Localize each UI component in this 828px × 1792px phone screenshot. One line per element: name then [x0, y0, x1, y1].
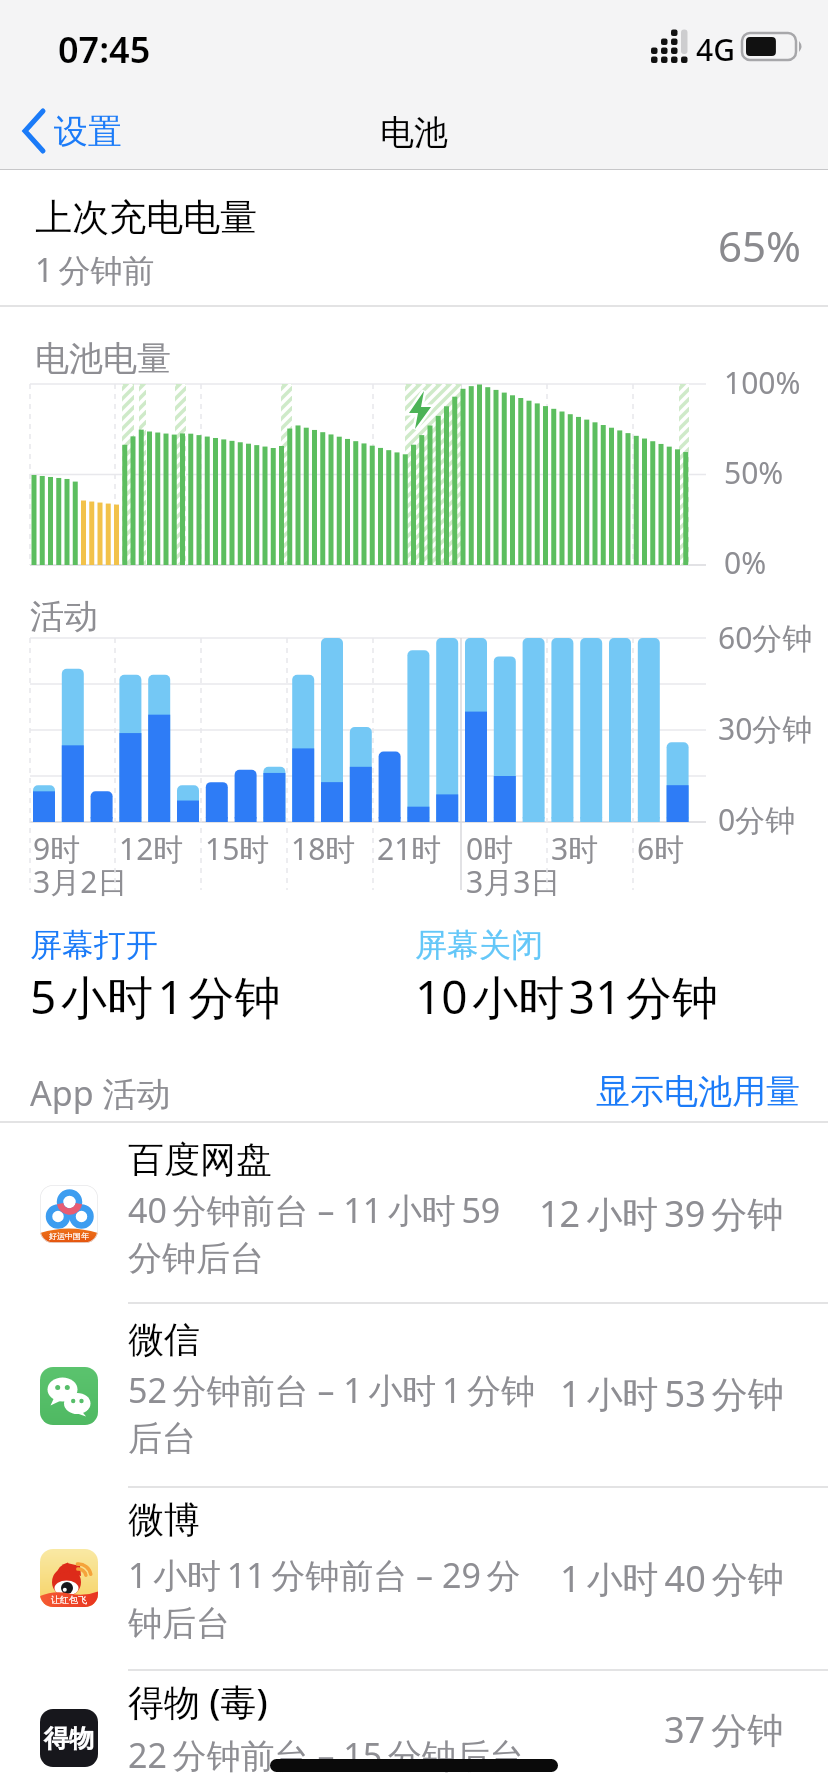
staticText: 3时 [551, 828, 599, 869]
staticText: 37 分钟 [664, 1705, 784, 1754]
staticText: 1 小时 53 分钟 [560, 1369, 784, 1418]
staticText: 得物 (毒) [128, 1677, 268, 1726]
staticText: 0分钟 [718, 799, 796, 840]
staticText: 3月3日 [466, 861, 561, 902]
staticText: 上次充电电量 [35, 194, 257, 241]
staticText: 电池电量 [35, 337, 171, 380]
staticText: 6时 [637, 828, 685, 869]
staticText: 设置 [54, 110, 122, 153]
staticText: 分钟后台 [128, 1237, 264, 1280]
staticText: 07:45 [58, 25, 151, 74]
staticText: 52 分钟前台 – 1 小时 1 分钟 [128, 1367, 536, 1413]
staticText: 21时 [377, 828, 442, 869]
staticText: 后台 [128, 1417, 196, 1460]
staticText: 好运中国年 [49, 1231, 89, 1241]
staticText: 10 小时 31 分钟 [415, 965, 719, 1028]
staticText: 15时 [205, 828, 270, 869]
staticText: 100% [724, 362, 801, 403]
staticText: 65% [718, 217, 801, 274]
button[interactable] [0, 1670, 828, 1792]
staticText: 9时 [33, 828, 81, 869]
staticText: 微信 [128, 1317, 200, 1362]
button[interactable]: 设置 [18, 106, 122, 156]
staticText: 屏幕打开 [30, 925, 158, 965]
staticText: 百度网盘 [128, 1137, 272, 1182]
staticText: 30分钟 [718, 708, 813, 749]
staticText: 让红包飞 [51, 1594, 87, 1605]
staticText: 1 小时 11 分钟前台 – 29 分 [128, 1552, 521, 1598]
staticText: 22 分钟前台 – 15 分钟后台 [128, 1732, 524, 1778]
staticText: 1 小时 40 分钟 [560, 1554, 784, 1603]
staticText: 60分钟 [718, 617, 813, 658]
staticText: 得物 [44, 1723, 94, 1754]
staticText: 3月2日 [33, 861, 128, 902]
staticText: 4G [696, 29, 735, 70]
staticText: 0时 [466, 828, 514, 869]
staticText: 40 分钟前台 – 11 小时 59 [128, 1187, 501, 1233]
button[interactable]: 显示电池用量 [596, 1070, 800, 1113]
staticText: 12时 [119, 828, 184, 869]
staticText: App 活动 [30, 1070, 171, 1116]
button[interactable] [0, 1122, 828, 1303]
staticText: 活动 [30, 595, 98, 638]
staticText: 屏幕关闭 [415, 925, 543, 965]
staticText: 0% [724, 542, 767, 583]
staticText: 电池 [380, 111, 448, 154]
staticText: 12 小时 39 分钟 [539, 1189, 784, 1238]
staticText: 1 分钟前 [35, 248, 155, 292]
staticText: 18时 [291, 828, 356, 869]
button[interactable] [0, 1303, 828, 1487]
staticText: 钟后台 [128, 1602, 230, 1645]
staticText: 50% [724, 452, 784, 493]
button[interactable] [0, 1487, 828, 1670]
staticText: 微博 [128, 1497, 200, 1542]
staticText: 5 小时 1 分钟 [30, 965, 281, 1028]
